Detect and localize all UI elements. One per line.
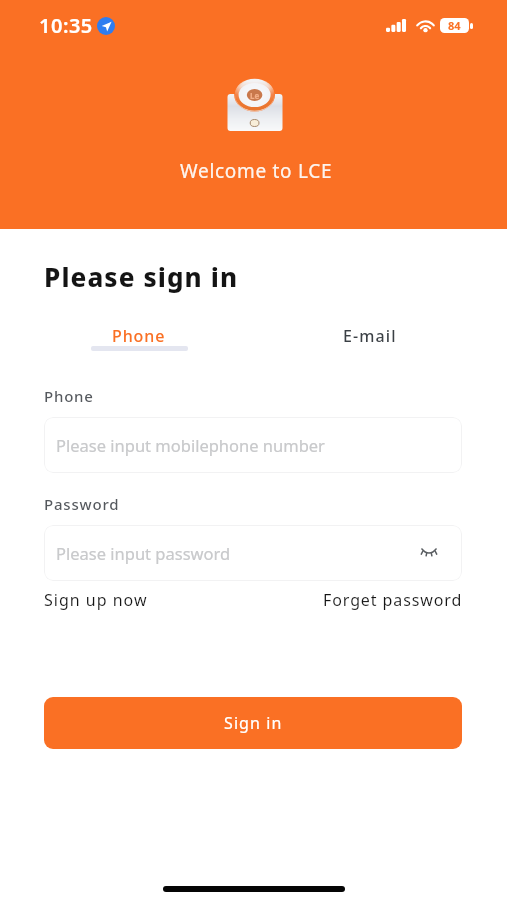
staticText: Password xyxy=(44,494,120,514)
button[interactable]: Phone xyxy=(90,318,188,358)
staticText: E-mail xyxy=(343,325,397,347)
button[interactable]: Show password xyxy=(416,538,442,564)
staticText: Sign up now xyxy=(44,589,148,611)
button[interactable]: Sign in xyxy=(44,697,462,749)
button[interactable]: Forget password xyxy=(323,589,463,611)
staticText: Sign in xyxy=(224,712,283,734)
staticText: Le xyxy=(250,90,260,101)
staticText: Please sign in xyxy=(44,259,239,294)
button[interactable]: E-mail xyxy=(321,318,419,358)
staticText: Phone xyxy=(112,325,166,347)
staticText: Please input mobilephone number xyxy=(56,434,325,456)
staticText: 84 xyxy=(448,18,461,33)
staticText: Welcome to LCE xyxy=(180,158,333,184)
button[interactable]: Sign up now xyxy=(44,589,148,611)
staticText: 10:35 xyxy=(39,12,93,39)
button[interactable]: Please input password xyxy=(44,525,462,581)
button[interactable]: Please input mobilephone number xyxy=(44,417,462,473)
staticText: Forget password xyxy=(323,589,463,611)
staticText: Phone xyxy=(44,386,94,406)
staticText: Please input password xyxy=(56,542,231,564)
